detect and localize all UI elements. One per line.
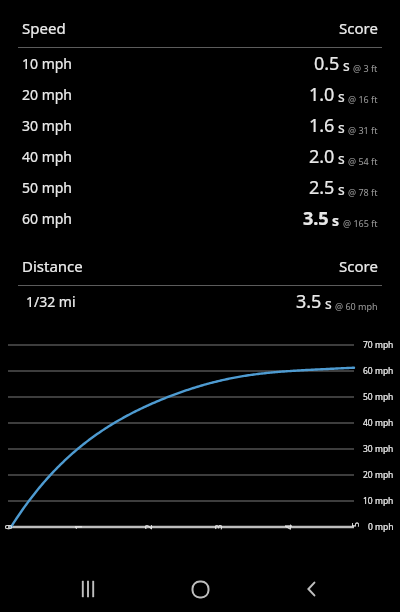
staticText: 1/32 mi bbox=[26, 292, 76, 311]
button[interactable]: Recent apps bbox=[64, 566, 112, 612]
staticText: 2.5 bbox=[309, 175, 335, 200]
staticText: @ 54 ft bbox=[348, 155, 378, 167]
staticText: @ 31 ft bbox=[348, 124, 378, 136]
staticText: 3 bbox=[212, 524, 224, 529]
button[interactable]: Home bbox=[176, 566, 224, 612]
staticText: @ 16 ft bbox=[348, 93, 378, 105]
staticText: @ 165 ft bbox=[343, 217, 378, 229]
staticText: @ 3 ft bbox=[353, 62, 378, 74]
staticText: 40 mph bbox=[363, 417, 394, 429]
staticText: Speed bbox=[22, 18, 66, 38]
staticText: 20 mph bbox=[22, 85, 73, 104]
staticText: 3.5 bbox=[296, 289, 322, 314]
staticText: 1.0 bbox=[309, 82, 335, 107]
staticText: 3.5 bbox=[303, 206, 329, 231]
staticText: 2 bbox=[142, 524, 154, 529]
staticText: Distance bbox=[22, 256, 83, 276]
button[interactable]: 60 mph bbox=[0, 203, 400, 234]
staticText: s bbox=[338, 118, 345, 137]
staticText: s bbox=[332, 211, 340, 230]
staticText: 30 mph bbox=[22, 116, 73, 135]
staticText: 60 mph bbox=[363, 365, 394, 377]
staticText: s bbox=[338, 87, 345, 106]
staticText: 10 mph bbox=[22, 54, 73, 73]
staticText: 0 mph bbox=[368, 521, 394, 533]
staticText: 60 mph bbox=[22, 209, 73, 228]
staticText: 30 mph bbox=[363, 443, 394, 455]
staticText: @ 60 mph bbox=[335, 300, 378, 312]
staticText: 2.0 bbox=[309, 144, 335, 169]
staticText: 20 mph bbox=[363, 469, 394, 481]
staticText: Score bbox=[339, 256, 378, 276]
staticText: 0 bbox=[2, 524, 14, 529]
staticText: s bbox=[343, 56, 350, 75]
staticText: 1 bbox=[72, 524, 84, 529]
button[interactable]: 50 mph bbox=[0, 172, 400, 203]
staticText: s bbox=[338, 180, 345, 199]
staticText: s bbox=[338, 149, 345, 168]
staticText: @ 78 ft bbox=[348, 186, 378, 198]
staticText: 1.6 bbox=[309, 113, 335, 138]
button[interactable]: 10 mph bbox=[0, 48, 400, 79]
staticText: 10 mph bbox=[363, 495, 394, 507]
button[interactable]: 40 mph bbox=[0, 141, 400, 172]
staticText: 4 bbox=[282, 524, 294, 529]
button[interactable]: 30 mph bbox=[0, 110, 400, 141]
staticText: 70 mph bbox=[363, 339, 394, 351]
staticText: s bbox=[325, 294, 332, 313]
staticText: 40 mph bbox=[22, 147, 73, 166]
staticText: 50 mph bbox=[363, 391, 394, 403]
button[interactable]: Back bbox=[288, 566, 336, 612]
button[interactable]: 1/32 mi bbox=[0, 286, 400, 317]
staticText: 50 mph bbox=[22, 178, 73, 197]
staticText: 0.5 bbox=[314, 51, 340, 76]
button[interactable]: 20 mph bbox=[0, 79, 400, 110]
staticText: Score bbox=[339, 18, 378, 38]
